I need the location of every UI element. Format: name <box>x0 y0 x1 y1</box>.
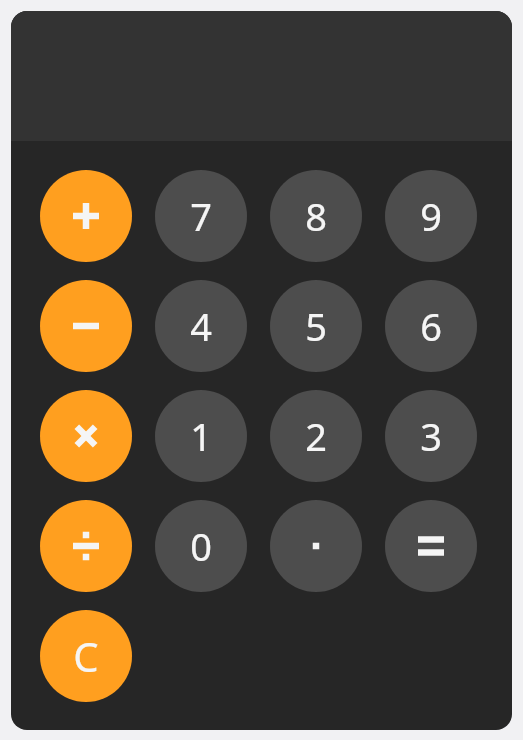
staticText: 5 <box>305 300 327 352</box>
staticText: 0 <box>190 520 212 572</box>
staticText: 6 <box>420 300 442 352</box>
button[interactable]: Seven <box>155 170 247 262</box>
staticText: 3 <box>420 410 442 462</box>
button[interactable]: Multiply <box>40 390 132 482</box>
staticText: 1 <box>190 410 212 462</box>
button[interactable]: Minus <box>40 280 132 372</box>
button[interactable]: Plus <box>40 170 132 262</box>
button[interactable]: Clear <box>40 610 132 702</box>
button[interactable]: One <box>155 390 247 482</box>
button[interactable]: Six <box>385 280 477 372</box>
button[interactable]: Zero <box>155 500 247 592</box>
staticText: C <box>73 629 99 683</box>
staticText: 2 <box>305 410 327 462</box>
button[interactable]: Two <box>270 390 362 482</box>
button[interactable]: Three <box>385 390 477 482</box>
staticText: 4 <box>190 300 212 352</box>
staticText: 7 <box>190 190 212 242</box>
staticText: 8 <box>305 190 327 242</box>
staticText: 9 <box>420 190 442 242</box>
button[interactable]: Eight <box>270 170 362 262</box>
button[interactable]: Divide <box>40 500 132 592</box>
button[interactable]: Equals <box>385 500 477 592</box>
button[interactable]: Nine <box>385 170 477 262</box>
button[interactable]: Four <box>155 280 247 372</box>
button[interactable]: Decimal point <box>270 500 362 592</box>
button[interactable]: Five <box>270 280 362 372</box>
